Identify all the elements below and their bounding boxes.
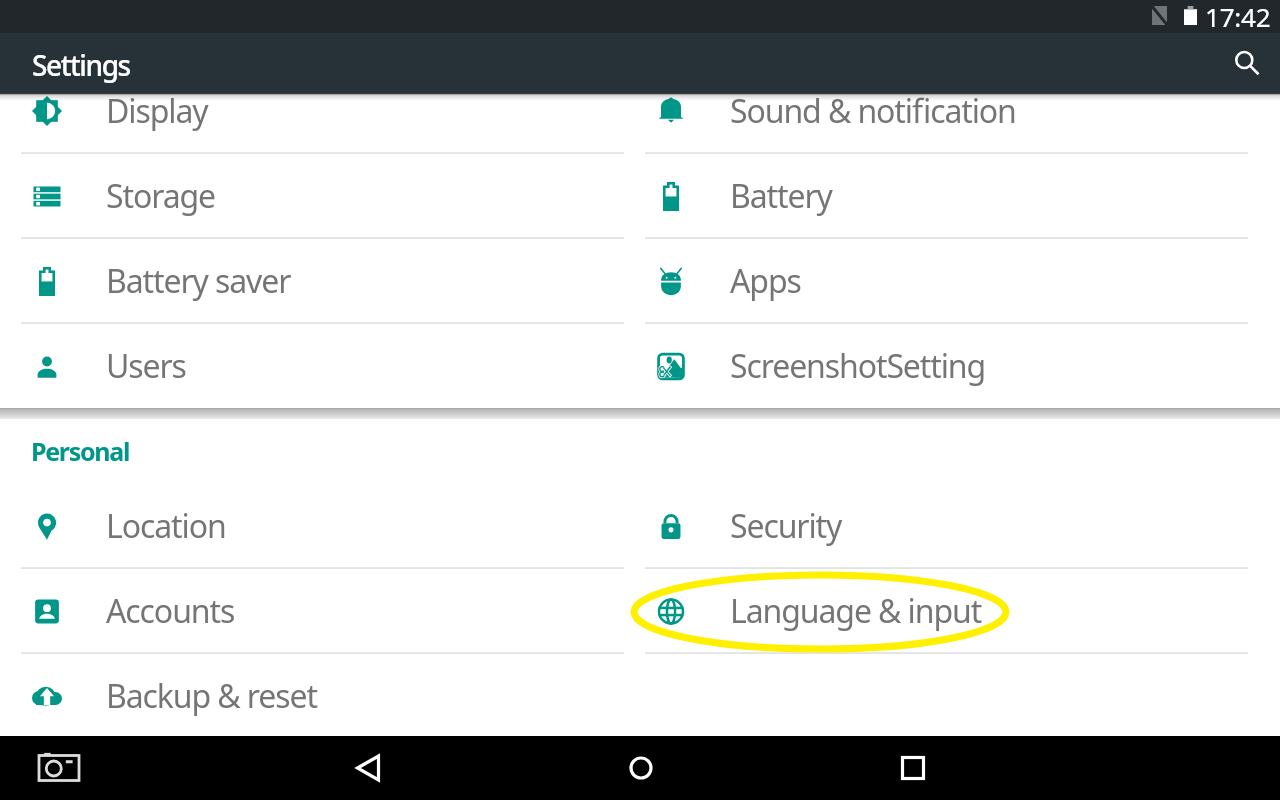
button[interactable]: Home — [611, 736, 671, 796]
button[interactable]: Screenshot — [29, 738, 89, 798]
staticText: Storage — [106, 174, 216, 218]
button[interactable]: Accounts — [0, 569, 624, 654]
button[interactable]: Apps — [624, 239, 1248, 324]
button[interactable]: Display — [0, 93, 624, 154]
staticText: ScreenshotSetting — [730, 344, 986, 388]
staticText: Apps — [730, 259, 801, 303]
staticText: Sound & notification — [730, 89, 1016, 133]
button[interactable]: Search — [1220, 39, 1268, 87]
button[interactable]: Battery saver — [0, 239, 624, 324]
staticText: Battery saver — [106, 259, 291, 303]
staticText: Location — [106, 504, 226, 548]
staticText: Settings — [32, 46, 130, 84]
button[interactable]: Users — [0, 324, 624, 409]
staticText: Accounts — [106, 589, 235, 633]
staticText: Security — [730, 504, 842, 548]
staticText: Display — [106, 89, 208, 133]
button[interactable]: Battery — [624, 154, 1248, 239]
button[interactable]: Storage — [0, 154, 624, 239]
staticText: Language & input — [730, 589, 982, 633]
button[interactable]: Location — [0, 484, 624, 569]
staticText: Users — [106, 344, 186, 388]
staticText: Personal — [31, 434, 130, 468]
button[interactable]: Backup & reset — [0, 654, 624, 739]
button[interactable]: Back — [338, 736, 398, 796]
button[interactable]: Sound & notification — [624, 93, 1248, 154]
button[interactable]: Security — [624, 484, 1248, 569]
staticText: Battery — [730, 174, 832, 218]
staticText: 17:42 — [1205, 0, 1271, 32]
staticText: Backup & reset — [106, 674, 317, 718]
button[interactable]: ScreenshotSetting — [624, 324, 1248, 409]
button[interactable]: Language & input — [624, 569, 1248, 654]
button[interactable]: Recent apps — [883, 736, 943, 796]
